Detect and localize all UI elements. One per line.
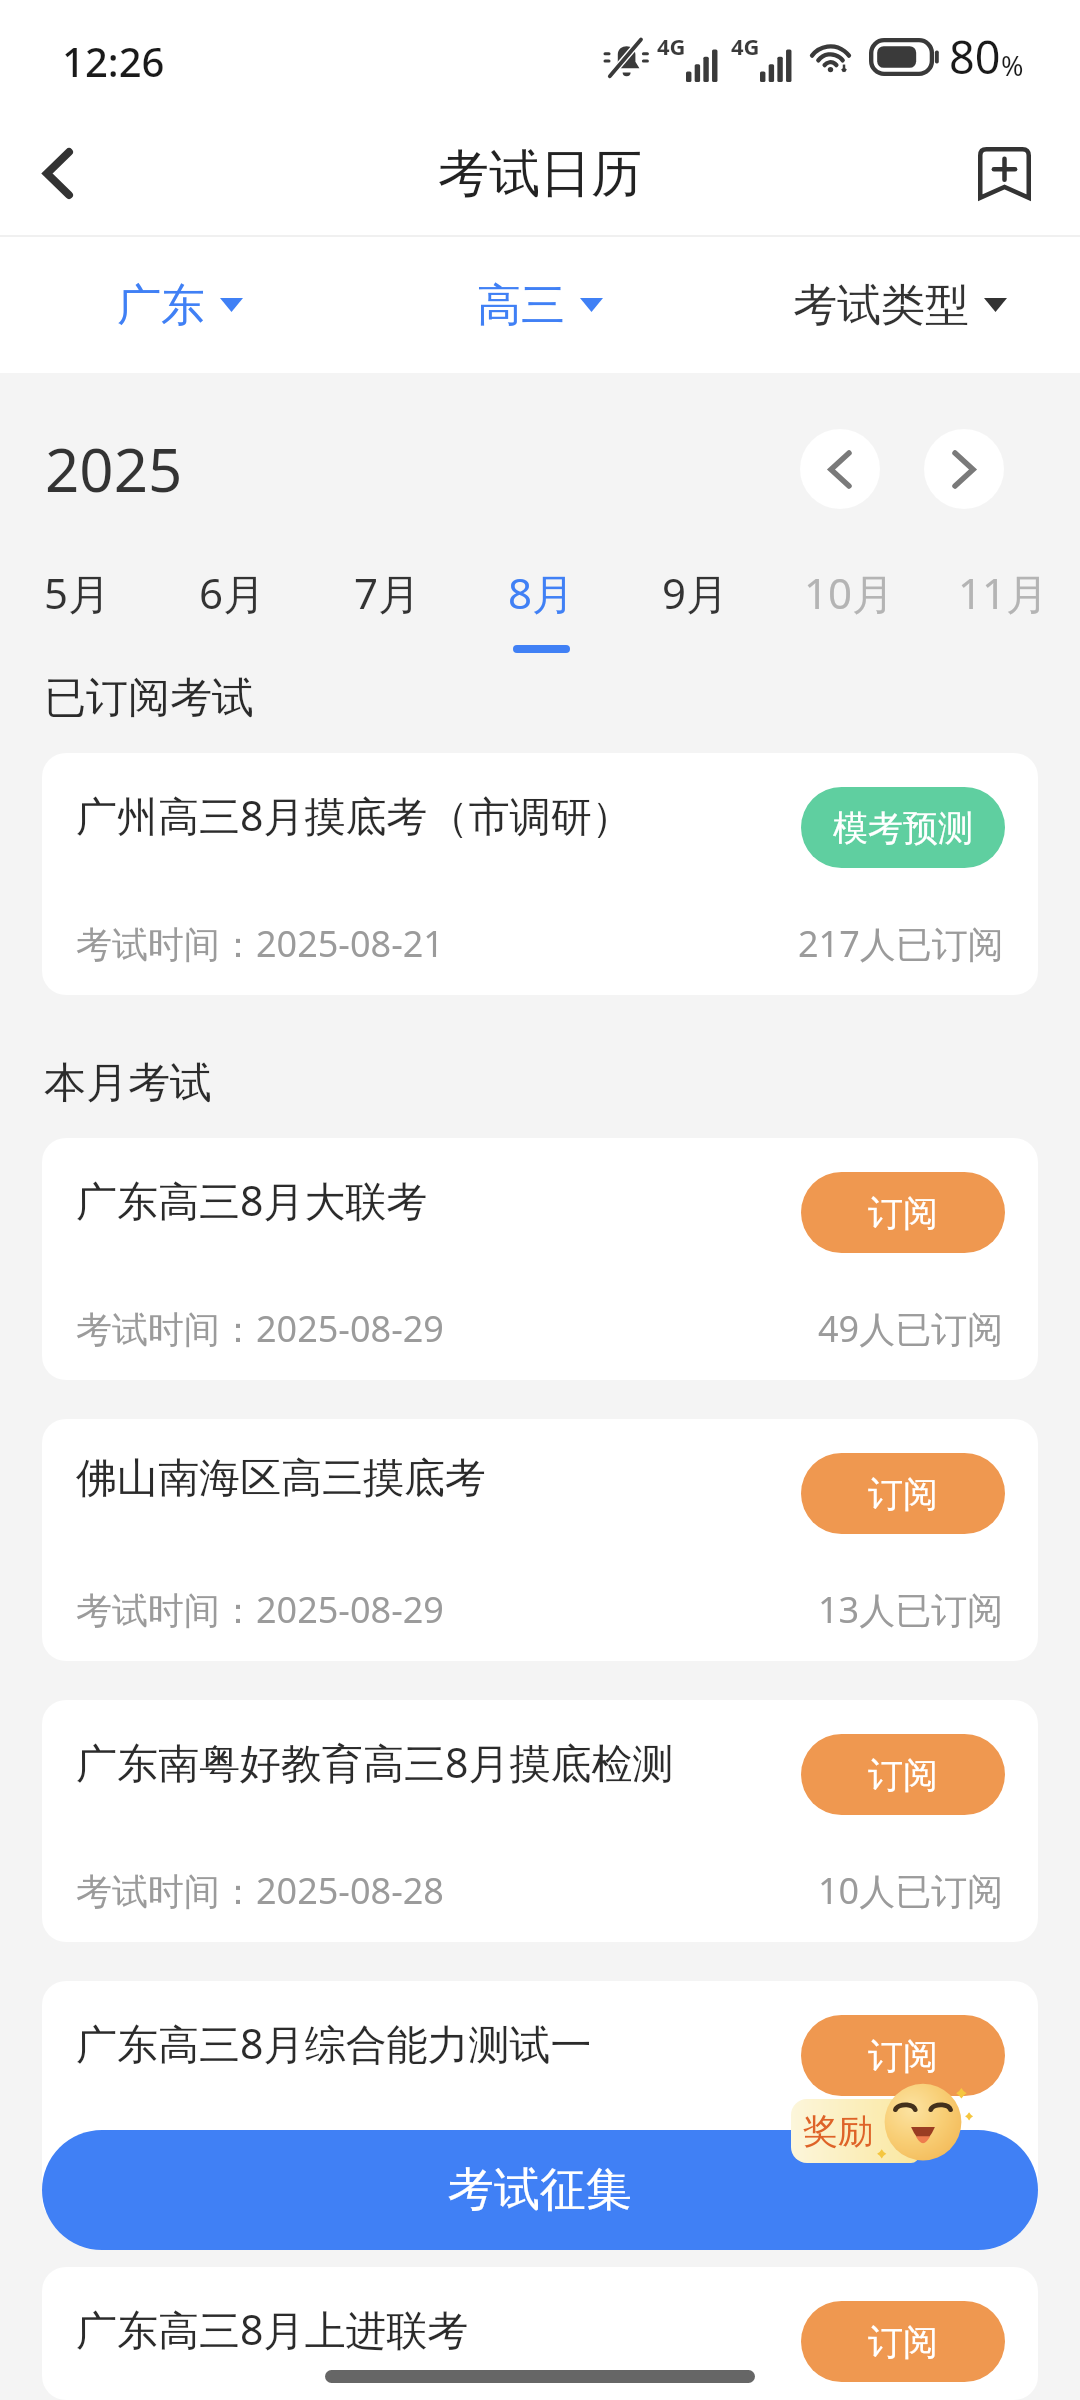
button[interactable]: 奖励	[791, 2099, 919, 2163]
staticText: 广东高三8月综合能力测试一	[76, 2015, 592, 2071]
staticText: 考试时间：2025-08-29	[76, 1585, 444, 1634]
button[interactable]: Next month	[924, 429, 1004, 509]
button[interactable]: 模考预测	[801, 787, 1005, 868]
staticText: 考试日历	[438, 142, 642, 206]
button[interactable]: 8月	[464, 533, 618, 653]
staticText: 广东	[117, 278, 205, 333]
staticText: 考试时间：2025-08-21	[76, 919, 444, 968]
staticText: %	[1001, 47, 1024, 84]
staticText: 49人已订阅	[818, 1304, 1004, 1353]
button[interactable]: 9月	[618, 533, 772, 645]
staticText: 10月	[804, 564, 895, 621]
staticText: 订阅	[868, 1472, 938, 1516]
button[interactable]: 10月	[772, 533, 926, 645]
button[interactable]: 11月	[926, 533, 1080, 645]
button[interactable]: 5月	[0, 533, 155, 645]
staticText: 12:26	[62, 34, 165, 88]
staticText: 奖励	[803, 2109, 873, 2153]
button[interactable]: 佛山南海区高三摸底考	[42, 1419, 1038, 1661]
staticText: 订阅	[868, 2320, 938, 2364]
staticText: 2025	[45, 428, 183, 510]
staticText: 广东高三8月上进联考	[76, 2301, 469, 2357]
button[interactable]: Previous month	[800, 429, 880, 509]
staticText: 订阅	[868, 2034, 938, 2078]
button[interactable]: Add bookmark	[960, 112, 1049, 235]
staticText: 6月	[199, 564, 266, 621]
staticText: 已订阅考试	[44, 672, 254, 725]
button[interactable]: 订阅	[801, 2301, 1005, 2382]
staticText: 考试类型	[793, 278, 969, 333]
button[interactable]: 7月	[310, 533, 464, 645]
staticText: 13人已订阅	[818, 1585, 1004, 1634]
staticText: 考试时间：2025-08-29	[76, 1304, 444, 1353]
button[interactable]: 考试类型	[720, 237, 1080, 373]
staticText: 广东南粤好教育高三8月摸底检测	[76, 1734, 674, 1790]
button[interactable]: 广州高三8月摸底考（市调研）	[42, 753, 1038, 995]
button[interactable]: 订阅	[801, 1172, 1005, 1253]
staticText: 8人已订阅	[839, 2147, 1004, 2196]
button[interactable]: 订阅	[801, 2015, 1005, 2096]
staticText: 广东高三8月大联考	[76, 1172, 428, 1228]
staticText: 10人已订阅	[818, 1866, 1004, 1915]
staticText: 广州高三8月摸底考（市调研）	[76, 787, 633, 843]
button[interactable]: 订阅	[801, 1453, 1005, 1534]
staticText: 8月	[508, 564, 575, 621]
button[interactable]: 广东南粤好教育高三8月摸底检测	[42, 1700, 1038, 1942]
staticText: 高三	[477, 278, 565, 333]
button[interactable]: 广东高三8月上进联考	[42, 2267, 1038, 2400]
staticText: 5月	[44, 564, 111, 621]
button[interactable]: 广东高三8月综合能力测试一	[42, 1981, 1038, 2223]
staticText: 11月	[958, 564, 1049, 621]
staticText: 佛山南海区高三摸底考	[76, 1453, 486, 1505]
staticText: 订阅	[868, 1753, 938, 1797]
staticText: 4G	[657, 31, 686, 61]
button[interactable]: 广东	[0, 237, 360, 373]
button[interactable]: 订阅	[801, 1734, 1005, 1815]
staticText: 模考预测	[833, 806, 973, 850]
button[interactable]: 广东高三8月大联考	[42, 1138, 1038, 1380]
staticText: 本月考试	[44, 1057, 212, 1110]
button[interactable]: 奖励 reward	[791, 2077, 971, 2173]
staticText: 考试征集	[448, 2161, 632, 2219]
button[interactable]: 高三	[360, 237, 720, 373]
staticText: 217人已订阅	[798, 919, 1004, 968]
button[interactable]: Back	[0, 112, 116, 235]
staticText: 9月	[662, 564, 729, 621]
button[interactable]: 考试征集	[42, 2130, 1038, 2250]
button[interactable]: 6月	[155, 533, 310, 645]
staticText: 订阅	[868, 1191, 938, 1235]
staticText: 4G	[731, 31, 760, 61]
staticText: 80	[949, 26, 1001, 87]
staticText: 考试时间：2025-08-28	[76, 1866, 444, 1915]
staticText: 7月	[354, 564, 421, 621]
